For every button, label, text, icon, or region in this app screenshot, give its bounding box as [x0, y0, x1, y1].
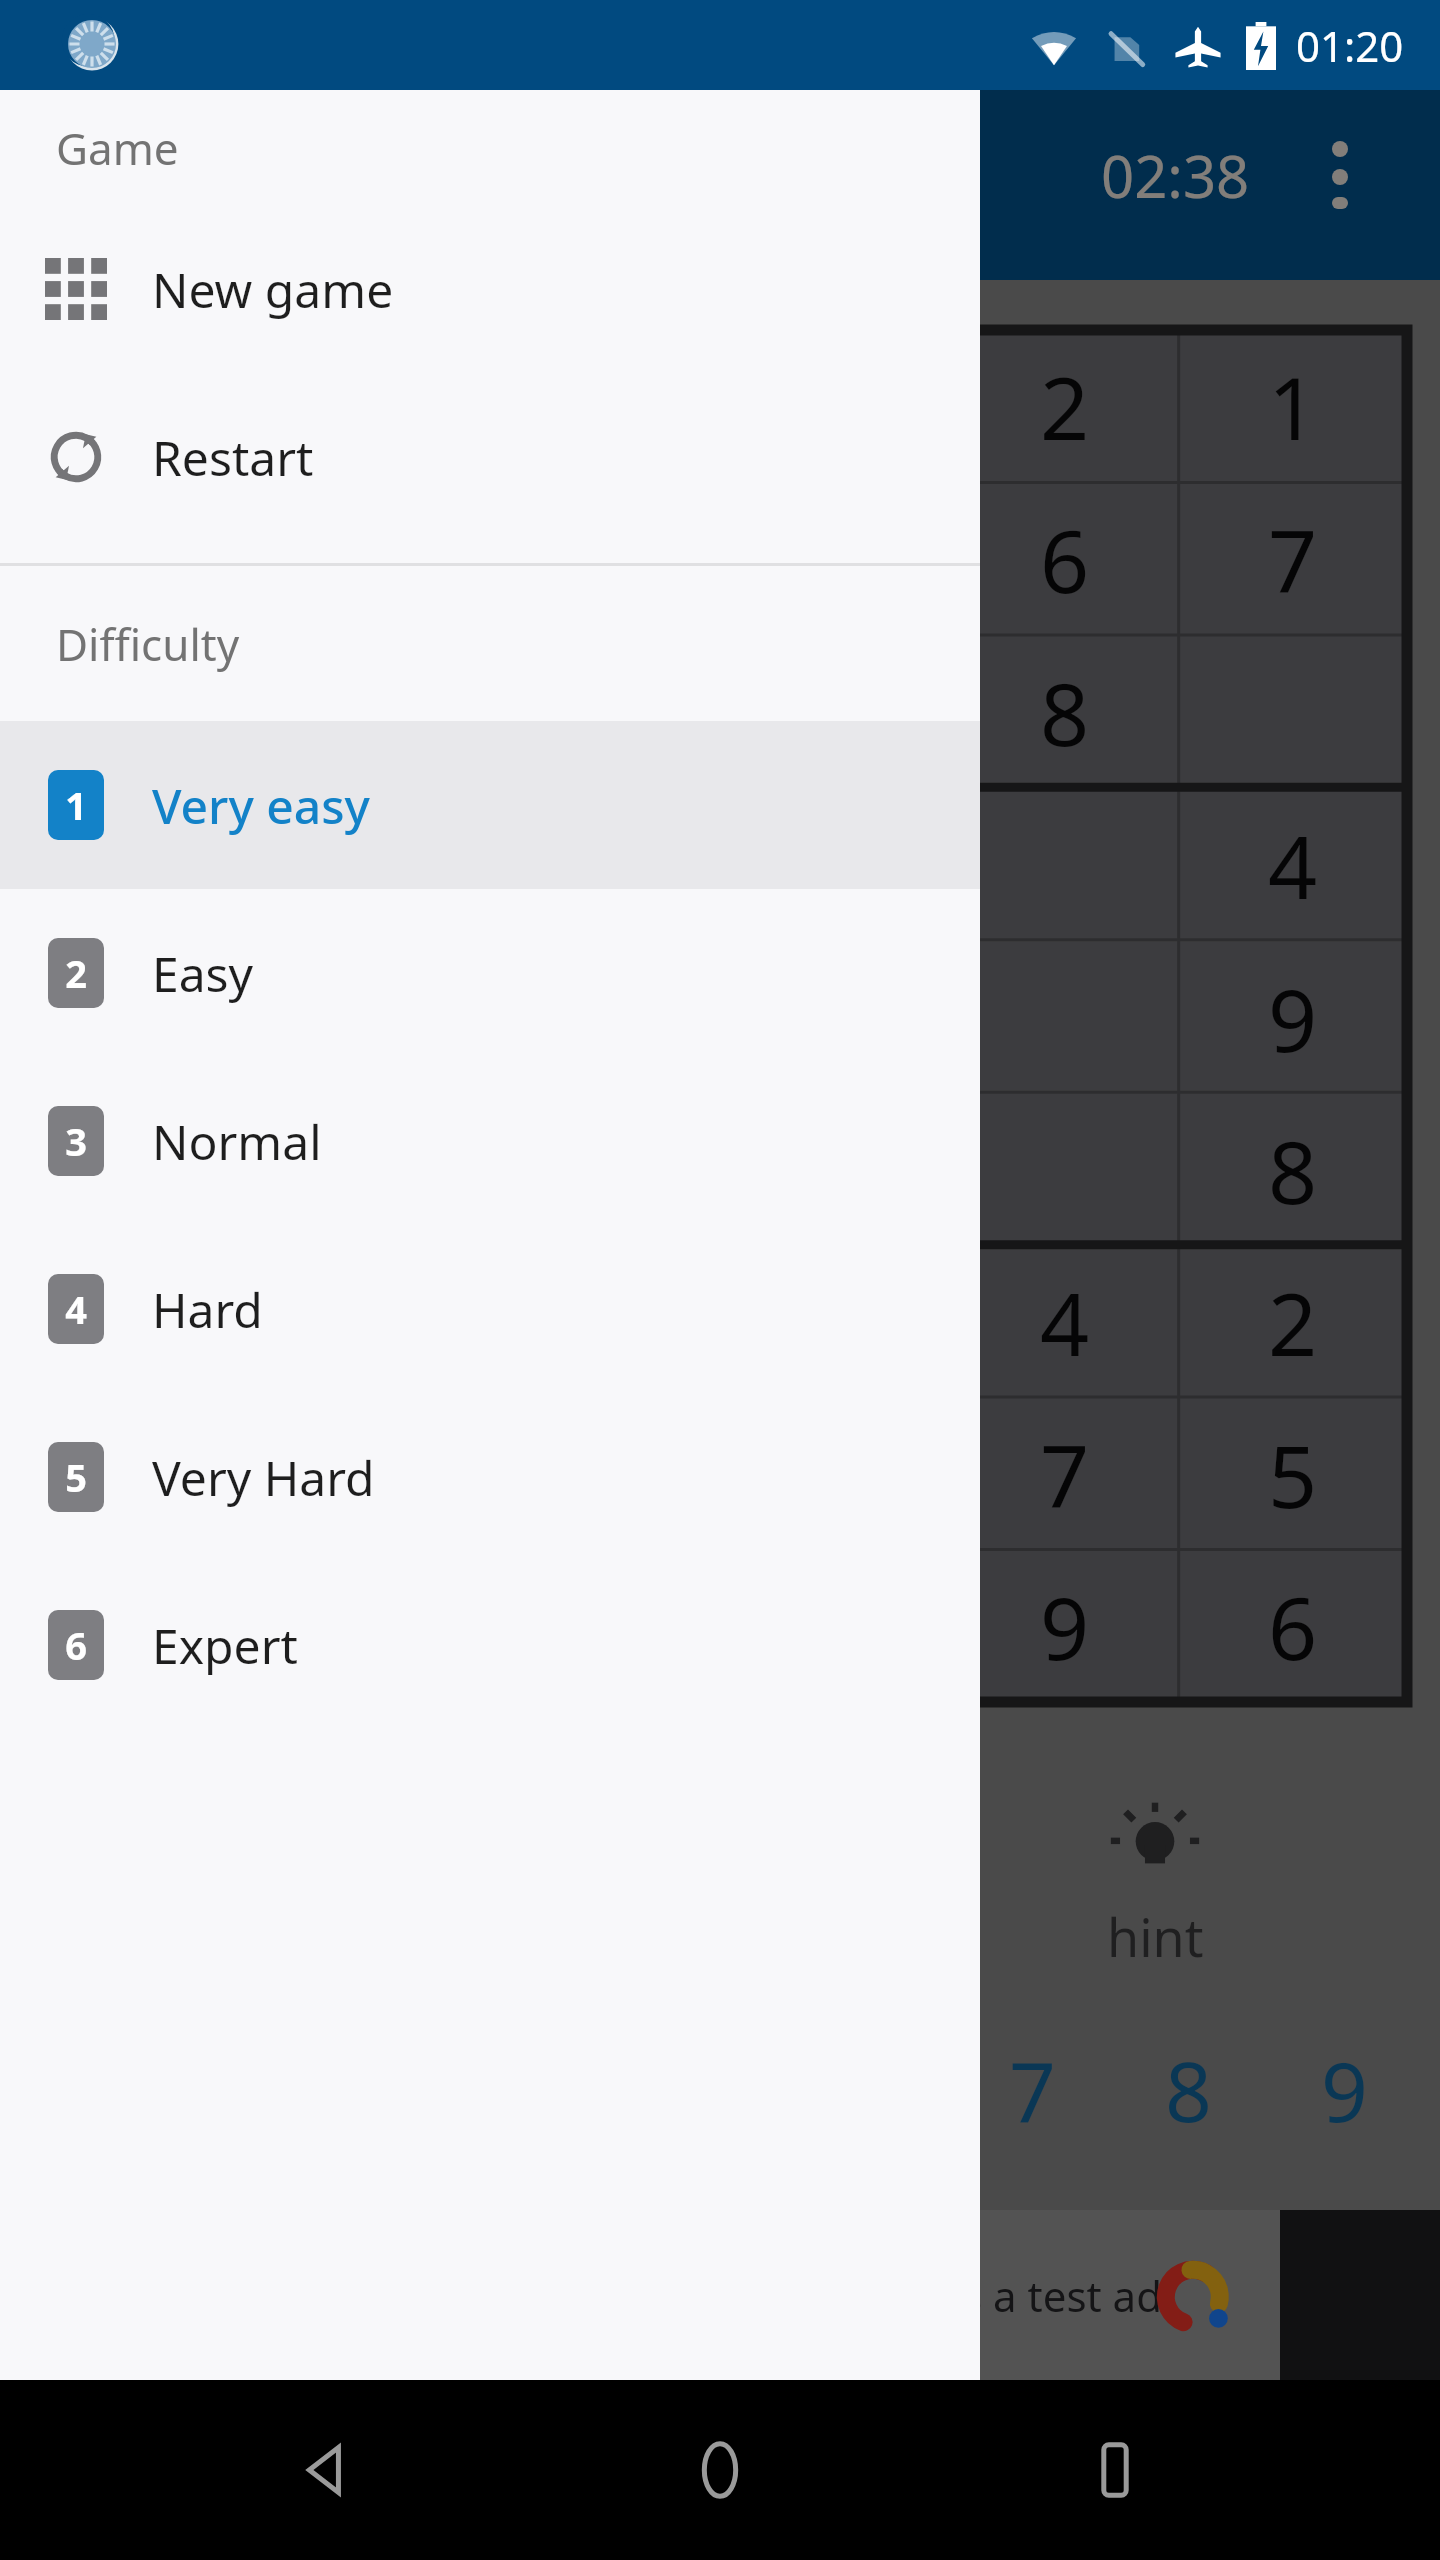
staticText: 02:38	[1101, 136, 1250, 215]
button[interactable]: hint	[1005, 1799, 1305, 1972]
button[interactable]	[951, 1094, 1179, 1246]
button[interactable]	[1179, 636, 1407, 789]
staticText: 7	[1009, 2034, 1056, 2146]
button[interactable]: 9	[722, 636, 951, 789]
staticText: 9	[812, 654, 862, 771]
button[interactable]: More options	[1300, 135, 1380, 215]
button[interactable]	[722, 789, 951, 942]
button[interactable]: 8	[951, 636, 1179, 789]
staticText: 1	[65, 779, 87, 831]
staticText: 9	[1268, 960, 1318, 1077]
staticText: 7	[1268, 501, 1318, 618]
staticText: 8	[1040, 654, 1090, 771]
button[interactable]: 5	[1179, 1398, 1407, 1550]
staticText: Restart	[152, 425, 314, 490]
button[interactable]: 5	[0, 1393, 980, 1561]
button[interactable]: 2	[951, 330, 1179, 483]
staticText: 4	[1268, 807, 1318, 924]
staticText: 5	[1268, 1416, 1318, 1533]
staticText: Very easy	[152, 773, 370, 838]
button[interactable]: Home	[650, 2400, 790, 2540]
staticText: 6	[65, 1619, 87, 1671]
button[interactable]: 6	[1179, 1550, 1407, 1702]
staticText: Very Hard	[152, 1445, 375, 1510]
staticText: 1	[1268, 348, 1318, 465]
button[interactable]: 6	[951, 483, 1179, 636]
staticText: 8	[1165, 2034, 1212, 2146]
button[interactable]: 7	[1179, 483, 1407, 636]
staticText: New game	[152, 257, 394, 322]
button[interactable]: 9	[1284, 2030, 1404, 2150]
button[interactable]	[951, 942, 1179, 1094]
button[interactable]: Back	[255, 2400, 395, 2540]
button[interactable]: 8	[1128, 2030, 1248, 2150]
staticText: Difficulty	[56, 614, 240, 674]
staticText: 2	[1268, 1264, 1318, 1381]
staticText: Game	[56, 118, 179, 178]
button[interactable]: New game	[0, 205, 980, 373]
button[interactable]: 4	[0, 1225, 980, 1393]
staticText: 4	[65, 1283, 87, 1335]
button[interactable]: 9	[1179, 942, 1407, 1094]
button[interactable]: 1	[0, 721, 980, 889]
button[interactable]: 3	[0, 1057, 980, 1225]
button[interactable]: 4	[1179, 789, 1407, 942]
button[interactable]: 7	[951, 1398, 1179, 1550]
staticText: 9	[1321, 2034, 1368, 2146]
staticText: Easy	[152, 941, 254, 1006]
staticText: 6	[1268, 1568, 1318, 1685]
staticText: 9	[1040, 1568, 1090, 1685]
button[interactable]: 9	[951, 1550, 1179, 1702]
staticText: 4	[1040, 1264, 1090, 1381]
button[interactable]	[951, 789, 1179, 942]
button[interactable]: 8	[1179, 1094, 1407, 1246]
button[interactable]: Restart	[0, 373, 980, 541]
staticText: hint	[1107, 1901, 1204, 1972]
button[interactable]: 6	[0, 1561, 980, 1729]
button[interactable]: Recents	[1045, 2400, 1185, 2540]
staticText: 7	[1040, 1416, 1090, 1533]
staticText: 3	[65, 1115, 87, 1167]
button[interactable]: 4	[951, 1246, 1179, 1398]
button[interactable]: 1	[1179, 330, 1407, 483]
staticText: Expert	[152, 1613, 298, 1678]
button[interactable]: 7	[972, 2030, 1092, 2150]
button[interactable]	[722, 483, 951, 636]
staticText: 8	[1268, 1112, 1318, 1229]
staticText: 2	[1040, 348, 1090, 465]
button[interactable]: 2	[0, 889, 980, 1057]
staticText: 5	[65, 1451, 87, 1503]
button[interactable]: 2	[1179, 1246, 1407, 1398]
staticText: This is a test ad.	[860, 2267, 1174, 2324]
staticText: 2	[65, 947, 87, 999]
staticText: Hard	[152, 1277, 263, 1342]
staticText: Normal	[152, 1109, 322, 1174]
staticText: 01:20	[1296, 17, 1404, 74]
